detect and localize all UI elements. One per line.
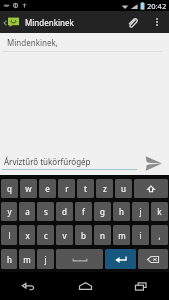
staticText: n — [100, 230, 105, 241]
staticText: f — [82, 206, 85, 217]
button[interactable]: j — [132, 202, 149, 221]
button[interactable]: q — [1, 179, 18, 198]
button[interactable]: k — [151, 202, 168, 221]
staticText: Mindenkinek, — [7, 37, 58, 48]
staticText: l — [8, 230, 11, 241]
button[interactable]: x — [19, 225, 35, 245]
button[interactable]: m — [113, 225, 130, 245]
button[interactable]: Mindenkinek — [0, 17, 74, 28]
staticText: i — [139, 230, 142, 241]
button[interactable]: u — [115, 179, 132, 198]
staticText: h — [7, 254, 12, 265]
staticText: s — [44, 206, 48, 217]
staticText: q — [7, 183, 12, 194]
staticText: x — [25, 230, 30, 241]
staticText: z — [103, 183, 107, 194]
button[interactable]: Enter — [105, 249, 136, 269]
button[interactable]: Send — [138, 151, 169, 175]
staticText: c — [44, 230, 48, 241]
staticText: t — [84, 183, 87, 194]
button[interactable]: m — [19, 249, 35, 269]
button[interactable]: More options — [144, 11, 169, 33]
staticText: g — [100, 206, 105, 217]
button[interactable]: c — [37, 225, 54, 245]
button[interactable]: Attach — [120, 11, 144, 33]
staticText: j — [139, 206, 142, 217]
staticText: a — [25, 206, 30, 217]
staticText: u — [121, 183, 126, 194]
staticText: , — [158, 230, 161, 241]
staticText: r — [65, 183, 69, 194]
staticText: 20:42 — [147, 1, 167, 11]
button[interactable]: i — [132, 225, 149, 245]
staticText: h — [119, 206, 124, 217]
button[interactable]: t — [77, 179, 94, 198]
button[interactable]: r — [58, 179, 75, 198]
button[interactable]: Shift — [134, 179, 168, 198]
staticText: Mindenkinek — [25, 17, 74, 28]
button[interactable]: v — [56, 225, 73, 245]
staticText: b — [81, 230, 86, 241]
button[interactable]: a — [19, 202, 35, 221]
button[interactable]: h — [113, 202, 130, 221]
button[interactable]: f — [75, 202, 92, 221]
button[interactable]: z — [96, 179, 113, 198]
staticText: j — [44, 254, 47, 265]
staticText: v — [62, 230, 67, 241]
button[interactable]: h — [1, 249, 17, 269]
button[interactable]: e — [39, 179, 56, 198]
button[interactable]: d — [56, 202, 73, 221]
button[interactable]: g — [94, 202, 111, 221]
button[interactable]: l — [1, 225, 17, 245]
button[interactable]: b — [75, 225, 92, 245]
button[interactable]: , — [151, 225, 168, 245]
staticText: w — [25, 183, 32, 194]
button[interactable]: Space — [56, 249, 103, 269]
button[interactable]: s — [37, 202, 54, 221]
staticText: Árvíztűrő tükörfúrógép — [4, 156, 91, 167]
staticText: d — [62, 206, 67, 217]
staticText: k — [157, 206, 162, 217]
staticText: e — [45, 183, 50, 194]
button[interactable]: w — [20, 179, 37, 198]
button[interactable]: j — [37, 249, 54, 269]
button[interactable]: Recent apps — [113, 272, 169, 300]
button[interactable]: Delete — [138, 249, 168, 269]
button[interactable]: Back — [0, 272, 57, 300]
button[interactable]: Home — [57, 272, 113, 300]
staticText: m — [23, 254, 31, 265]
button[interactable]: y — [1, 202, 17, 221]
staticText: m — [118, 230, 126, 241]
staticText: y — [7, 206, 12, 217]
button[interactable]: n — [94, 225, 111, 245]
